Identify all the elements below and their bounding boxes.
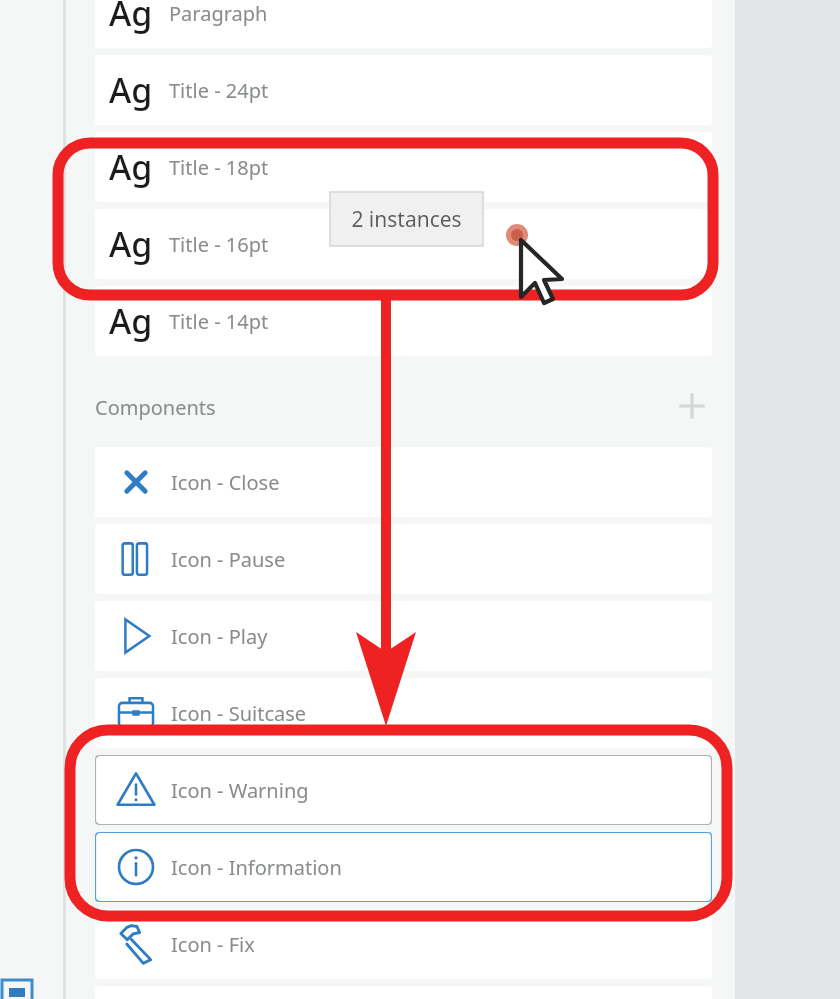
button[interactable]: Ag xyxy=(95,0,712,48)
staticText: Icon - Play xyxy=(171,623,268,650)
button[interactable]: Icon - Fix xyxy=(95,909,712,979)
button[interactable]: Icon - Play xyxy=(95,601,712,671)
staticText: Ag xyxy=(109,0,153,36)
button[interactable]: Ag xyxy=(95,286,712,356)
staticText: Ag xyxy=(109,298,153,344)
staticText: Icon - Fix xyxy=(171,931,255,958)
button[interactable]: Icon - Close xyxy=(95,447,712,517)
staticText: 2 instances xyxy=(351,205,462,234)
button[interactable]: Ag xyxy=(95,55,712,125)
staticText: Ag xyxy=(109,144,153,190)
other: 2 instances tooltip xyxy=(330,192,483,246)
button[interactable]: Ag xyxy=(95,209,712,279)
staticText: Title - 18pt xyxy=(169,154,269,181)
button[interactable]: Icon - Information xyxy=(95,832,712,902)
staticText: Ag xyxy=(109,221,153,267)
button[interactable]: Icon - Suitcase xyxy=(95,678,712,748)
button[interactable]: Icon - Warning xyxy=(95,755,712,825)
button[interactable]: Add component xyxy=(668,382,716,430)
button[interactable]: Icon - Pause xyxy=(95,524,712,594)
staticText: Icon - Suitcase xyxy=(171,700,307,727)
staticText: Components xyxy=(95,394,216,421)
button[interactable]: Components xyxy=(95,380,712,434)
staticText: Icon - Close xyxy=(171,469,280,496)
staticText: Title - 24pt xyxy=(169,77,269,104)
staticText: Title - 14pt xyxy=(169,308,269,335)
staticText: Icon - Warning xyxy=(171,777,309,804)
staticText: Icon - Information xyxy=(171,854,342,881)
button[interactable]: Ag xyxy=(95,132,712,202)
staticText: Title - 16pt xyxy=(169,231,269,258)
staticText: Icon - Pause xyxy=(171,546,286,573)
staticText: Ag xyxy=(109,67,153,113)
staticText: Paragraph xyxy=(169,0,268,27)
